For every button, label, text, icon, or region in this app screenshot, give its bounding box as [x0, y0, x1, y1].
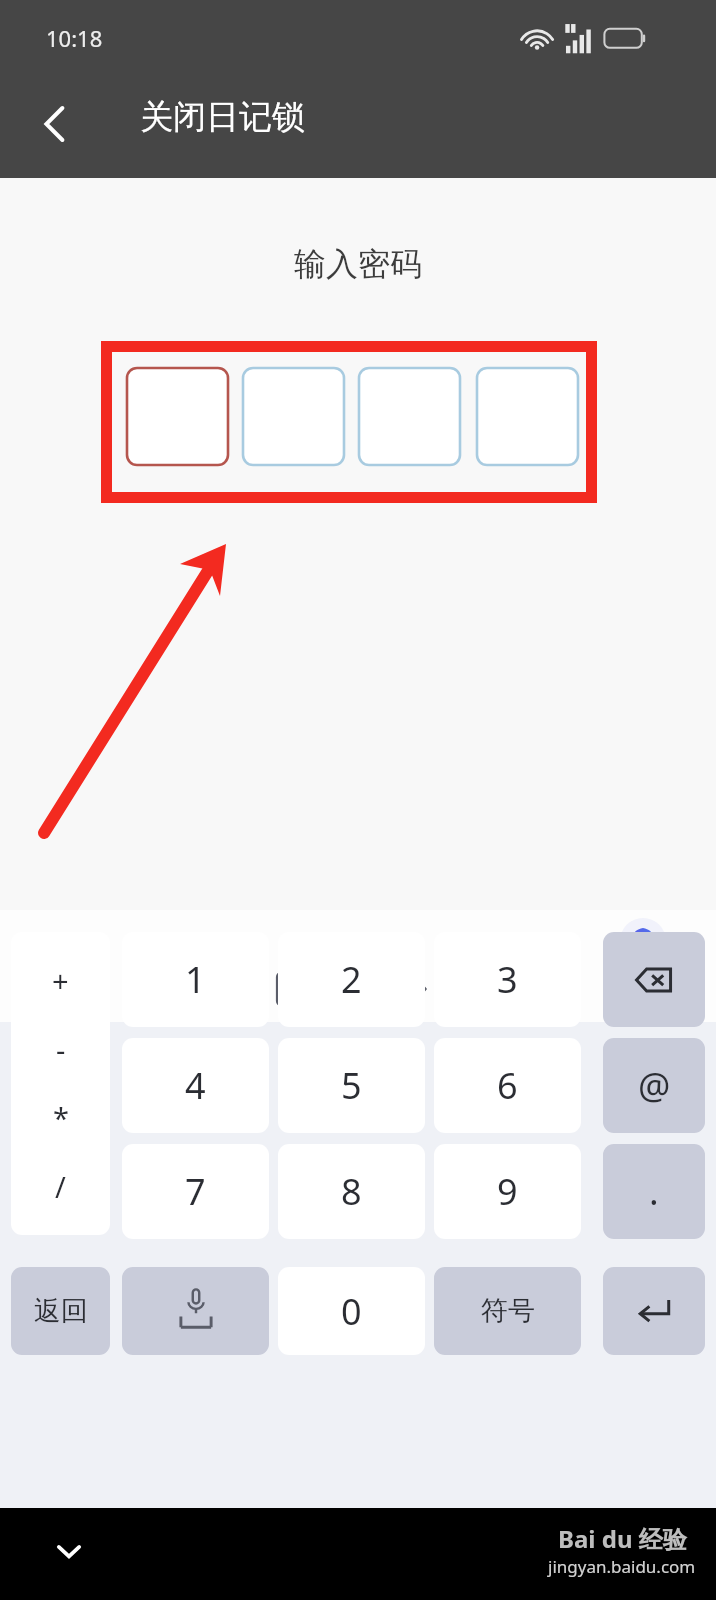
button[interactable]: 9 — [434, 1144, 581, 1239]
button[interactable]: 8 — [278, 1144, 425, 1239]
button[interactable]: Operators — [11, 932, 110, 1235]
staticText: . — [649, 1167, 659, 1216]
staticText: 0 — [341, 1287, 362, 1336]
button[interactable]: 返回 — [11, 1267, 110, 1355]
button[interactable]: 5 — [278, 1038, 425, 1133]
staticText: 10:18 — [46, 23, 103, 53]
button[interactable]: 1 — [122, 932, 269, 1027]
staticText: 6 — [497, 1061, 518, 1110]
button[interactable]: Baidu input — [22, 953, 94, 1025]
button[interactable]: Emoji — [132, 953, 204, 1025]
button[interactable]: 0 — [278, 1267, 425, 1355]
staticText: 符号 — [481, 1294, 535, 1328]
button[interactable]: 符号 — [434, 1267, 581, 1355]
staticText: 8 — [341, 1167, 362, 1216]
staticText: 3 — [497, 955, 518, 1004]
button[interactable]: Collapse keyboard — [609, 953, 681, 1025]
staticText: Bai du 经验 — [558, 1522, 687, 1555]
button[interactable]: 6 — [434, 1038, 581, 1133]
button[interactable]: Keyboard layout — [254, 953, 326, 1025]
button[interactable]: Hide keyboard — [34, 1516, 104, 1586]
button[interactable]: @ — [603, 1038, 705, 1133]
button[interactable]: Move cursor — [376, 953, 448, 1025]
button[interactable]: . — [603, 1144, 705, 1239]
button[interactable]: Delete — [603, 932, 705, 1027]
button[interactable]: Enter — [603, 1267, 705, 1355]
button[interactable]: 3 — [434, 932, 581, 1027]
button[interactable]: 2 — [278, 932, 425, 1027]
button[interactable]: 4 — [122, 1038, 269, 1133]
staticText: / — [55, 1167, 66, 1206]
staticText: - — [56, 1030, 66, 1069]
staticText: @ — [638, 1061, 671, 1110]
staticText: * — [53, 1098, 69, 1137]
staticText: 4 — [185, 1061, 206, 1110]
staticText: 5 — [341, 1061, 362, 1110]
staticText: 关闭日记锁 — [140, 96, 305, 138]
staticText: 2 — [341, 955, 362, 1004]
staticText: 9 — [497, 1167, 518, 1216]
staticText: 输入密码 — [0, 244, 716, 284]
button[interactable]: 7 — [122, 1144, 269, 1239]
button[interactable]: Search — [499, 953, 571, 1025]
button[interactable]: AI assistant — [618, 916, 668, 966]
button[interactable]: Voice input — [122, 1267, 269, 1355]
staticText: 7 — [185, 1167, 206, 1216]
button[interactable]: Back — [20, 88, 92, 160]
staticText: 返回 — [34, 1294, 88, 1328]
staticText: jingyan.baidu.com — [548, 1555, 696, 1578]
staticText: 1 — [185, 955, 206, 1004]
staticText: + — [52, 961, 69, 1000]
